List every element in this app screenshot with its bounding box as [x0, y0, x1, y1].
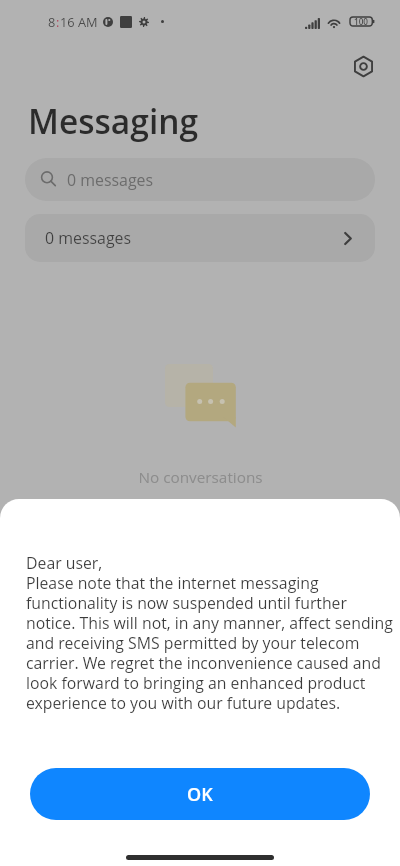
staticText: 100	[354, 16, 369, 27]
button[interactable]: Settings	[346, 49, 380, 83]
staticText: 0 messages	[45, 227, 132, 249]
button[interactable]: 0 messages	[25, 214, 375, 262]
staticText: No conversations	[138, 467, 263, 488]
staticText: 16 AM	[60, 13, 98, 30]
staticText: OK	[187, 782, 213, 807]
staticText: :	[56, 13, 60, 30]
button[interactable]: OK	[30, 768, 370, 820]
staticText: 0 messages	[67, 169, 154, 191]
button[interactable]: 0 messages	[25, 158, 375, 201]
staticText: 8	[48, 13, 56, 30]
staticText: Messaging	[28, 98, 199, 144]
staticText: Dear user, Please note that the internet…	[26, 552, 400, 713]
